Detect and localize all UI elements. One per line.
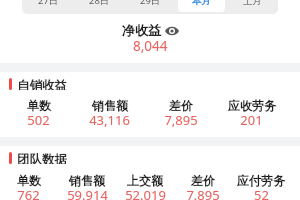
staticText: 自销收益 [17,78,67,90]
staticText: 团队数据 [17,152,67,164]
staticText: 502 [27,111,50,129]
staticText: 单数 [27,98,51,113]
staticText: 差价 [169,98,193,113]
staticText: 应付劳务 [237,173,285,188]
staticText: 201 [240,111,263,129]
staticText: 43,116 [89,111,130,129]
staticText: 销售额 [92,98,128,113]
button[interactable]: Toggle amount visibility [165,25,179,36]
button[interactable]: 上月 [229,0,276,12]
staticText: 应收劳务 [228,98,276,113]
staticText: 上月 [243,0,262,7]
staticText: 本月 [192,0,211,7]
button[interactable]: 本月 [178,0,225,12]
staticText: 7,895 [164,111,198,129]
staticText: 上交额 [127,173,163,188]
staticText: 59.914 [67,186,108,200]
staticText: 52 [254,186,269,200]
button[interactable]: 28日 [76,0,123,12]
button[interactable]: 27日 [24,0,72,12]
staticText: 7.895 [186,186,220,200]
staticText: 29日 [140,0,161,7]
button[interactable]: 29日 [127,0,174,12]
staticText: 52.019 [125,186,166,200]
staticText: 销售额 [69,173,105,188]
staticText: 8,044 [133,37,168,55]
staticText: 27日 [38,0,59,7]
staticText: 净收益 [122,22,161,38]
staticText: 单数 [17,173,41,188]
staticText: 差价 [191,173,215,188]
staticText: 762 [17,186,40,200]
staticText: 28日 [89,0,110,7]
